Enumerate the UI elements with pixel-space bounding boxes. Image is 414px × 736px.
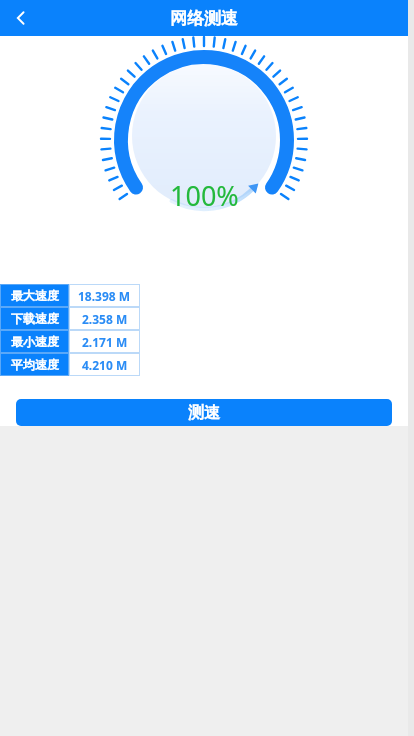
staticText: 2.358 M <box>82 311 128 327</box>
staticText: 测速 <box>188 403 220 423</box>
staticText: 100% <box>170 177 239 214</box>
staticText: 最小速度 <box>11 334 59 349</box>
staticText: 平均速度 <box>11 357 59 372</box>
staticText: 网络测速 <box>170 8 238 29</box>
button[interactable]: 最小速度 <box>0 330 140 353</box>
button[interactable]: Back <box>6 3 36 33</box>
staticText: 最大速度 <box>11 288 59 303</box>
button[interactable]: 下载速度 <box>0 307 140 330</box>
staticText: 2.171 M <box>82 334 128 350</box>
staticText: 18.398 M <box>78 288 131 304</box>
button[interactable]: 平均速度 <box>0 353 140 376</box>
button[interactable]: 最大速度 <box>0 284 140 307</box>
button[interactable]: 测速 <box>16 399 392 426</box>
staticText: 下载速度 <box>11 311 59 326</box>
staticText: 4.210 M <box>82 357 128 373</box>
